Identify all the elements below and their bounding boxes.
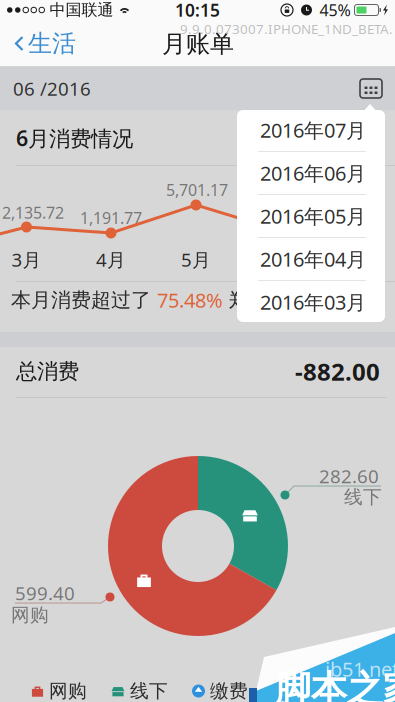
button[interactable]: 生活 [0, 20, 86, 66]
button[interactable]: Choose month [354, 73, 388, 104]
staticText: jb51.net [325, 656, 395, 682]
staticText: 2016年04月 [260, 246, 366, 272]
staticText: 06 /2016 [13, 76, 91, 101]
staticText: 3月 [11, 247, 41, 272]
staticText: 599.40 [15, 581, 75, 605]
button[interactable]: 缴费 [192, 679, 248, 702]
staticText: 45% [319, 0, 350, 21]
staticText: 2016年03月 [260, 289, 366, 315]
staticText: 总消费 [16, 358, 79, 385]
staticText: 中国联通 [44, 0, 118, 20]
staticText: 6月消费情况 [16, 124, 133, 152]
staticText: 9.9.0.073007.IPHONE_1ND_BETA. [180, 20, 393, 38]
staticText: 2016年05月 [260, 203, 366, 229]
staticText: 线下 [344, 485, 382, 508]
staticText: 2016年06月 [260, 160, 366, 186]
staticText: 2,135.72 [2, 202, 64, 223]
staticText: 75.48% [157, 287, 223, 313]
staticText: 5月 [181, 247, 211, 272]
staticText: 网购 [11, 603, 49, 626]
button[interactable]: 网购 [31, 679, 87, 702]
staticText: 1,191.77 [80, 207, 142, 228]
button[interactable]: 2016年06月 [237, 152, 385, 194]
button[interactable]: 2016年07月 [237, 109, 385, 151]
button[interactable]: 2016年03月 [237, 281, 385, 323]
staticText: 282.60 [319, 464, 379, 488]
staticText: 2016年07月 [260, 117, 366, 143]
button[interactable]: 2016年04月 [237, 238, 385, 280]
staticText: 脚本之家 [275, 667, 395, 702]
staticText: 生活 [28, 29, 76, 58]
button[interactable]: 2016年05月 [237, 195, 385, 237]
button[interactable]: 线下 [111, 679, 168, 702]
staticText: 郑州市的用户 [223, 288, 349, 312]
staticText: 本月消费超过了 [11, 288, 157, 312]
staticText: 线下 [130, 679, 168, 702]
staticText: 网购 [49, 679, 87, 702]
staticText: 5,701.17 [166, 179, 228, 200]
staticText: 月账单 [162, 29, 234, 59]
staticText: -882.00 [295, 356, 380, 387]
staticText: 10:15 [175, 0, 220, 21]
staticText: 缴费 [210, 679, 248, 702]
staticText: 4月 [96, 247, 126, 272]
